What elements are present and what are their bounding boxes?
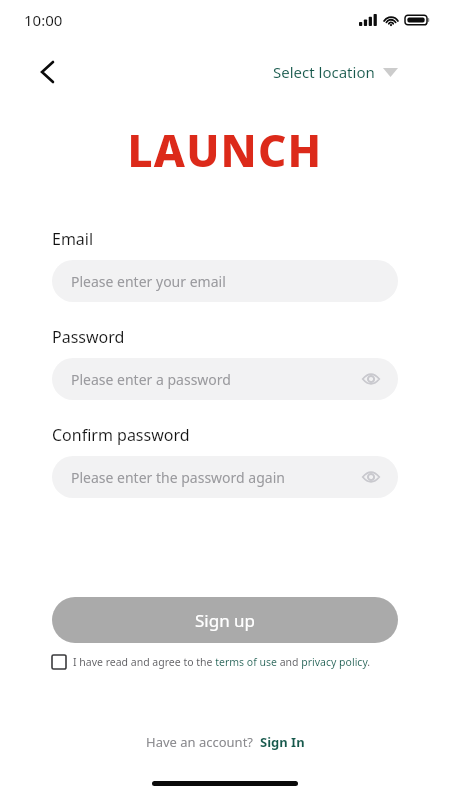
staticText: 10:00 bbox=[24, 10, 63, 30]
button[interactable]: Back bbox=[32, 57, 62, 87]
button[interactable]: Please enter the password again bbox=[52, 456, 398, 498]
button[interactable]: Sign up bbox=[52, 597, 398, 643]
button[interactable]: I have read and agree to the terms of us… bbox=[52, 655, 398, 669]
staticText: LAUNCH bbox=[0, 120, 450, 180]
staticText: Have an account? bbox=[146, 733, 253, 751]
staticText: Please enter a password bbox=[71, 370, 231, 389]
button[interactable]: Show password bbox=[361, 467, 381, 487]
button[interactable]: Show password bbox=[361, 369, 381, 389]
staticText: Please enter the password again bbox=[71, 468, 285, 487]
staticText: Select location bbox=[273, 62, 375, 82]
button[interactable]: Sign In bbox=[260, 733, 305, 751]
staticText: Email bbox=[52, 228, 94, 250]
staticText: Password bbox=[52, 326, 125, 348]
staticText: Please enter your email bbox=[71, 272, 226, 291]
staticText: Confirm password bbox=[52, 424, 190, 446]
staticText: I have read and agree to the terms of us… bbox=[73, 655, 371, 669]
staticText: Sign up bbox=[195, 609, 256, 632]
button[interactable]: Please enter a password bbox=[52, 358, 398, 400]
button[interactable]: Select location bbox=[273, 62, 398, 82]
staticText: Sign In bbox=[260, 733, 305, 751]
button[interactable]: Please enter your email bbox=[52, 260, 398, 302]
